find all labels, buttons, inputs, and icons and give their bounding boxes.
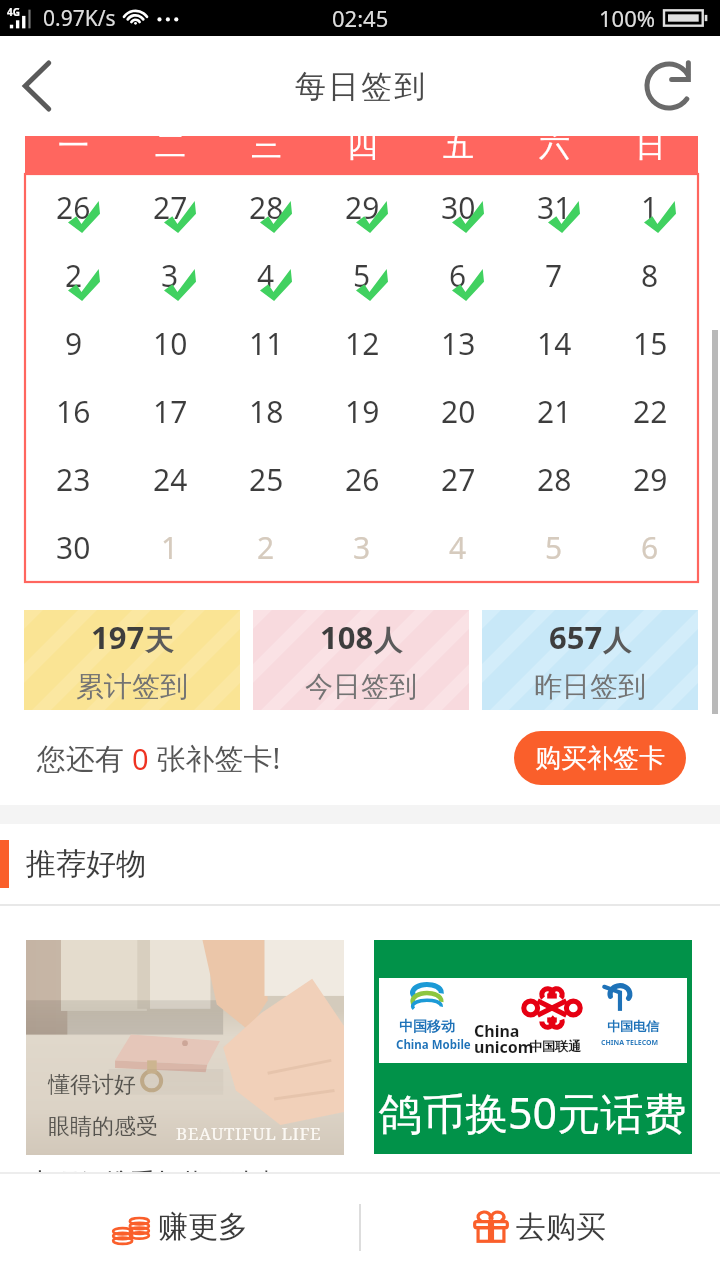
staticText: 5 <box>545 527 563 568</box>
button[interactable]: 31 <box>506 174 602 242</box>
button[interactable]: 懂得讨好 <box>26 940 344 1200</box>
button[interactable]: 21 <box>506 378 602 446</box>
button[interactable]: 2 <box>218 514 314 582</box>
button[interactable]: 27 <box>122 174 218 242</box>
staticText: 100% <box>599 3 656 33</box>
button[interactable]: 22 <box>602 378 698 446</box>
staticText: CHINA TELECOM <box>601 1038 659 1048</box>
staticText: 11 <box>249 323 284 364</box>
staticText: 中国电信 <box>607 1018 659 1034</box>
staticText: 今日签到 <box>305 669 417 704</box>
button[interactable]: 23 <box>25 446 122 514</box>
button[interactable]: 12 <box>314 310 410 378</box>
staticText: 28 <box>249 187 284 228</box>
button[interactable]: 6 <box>602 514 698 582</box>
button[interactable]: 16 <box>25 378 122 446</box>
button[interactable]: 29 <box>602 446 698 514</box>
button[interactable]: 24 <box>122 446 218 514</box>
staticText: 27 <box>153 187 188 228</box>
button[interactable]: 9 <box>25 310 122 378</box>
staticText: 5 <box>353 255 371 296</box>
staticText: 人 <box>374 623 402 658</box>
button[interactable]: 27 <box>410 446 506 514</box>
button[interactable]: 7 <box>506 242 602 310</box>
button[interactable]: 657 <box>482 610 698 710</box>
button[interactable]: 14 <box>506 310 602 378</box>
button[interactable]: 13 <box>410 310 506 378</box>
staticText: 三 <box>251 126 282 164</box>
button[interactable]: 28 <box>218 174 314 242</box>
staticText: 31 <box>537 187 572 228</box>
staticText: 24 <box>153 459 188 500</box>
staticText: 赚更多 <box>158 1208 248 1246</box>
staticText: 9 <box>65 323 83 364</box>
button[interactable]: 28 <box>506 446 602 514</box>
button[interactable]: Refresh <box>636 36 720 136</box>
button[interactable]: 11 <box>218 310 314 378</box>
staticText: 26 <box>56 187 91 228</box>
staticText: 鸽币兑换50元话费券 <box>374 1167 612 1203</box>
button[interactable]: 29 <box>314 174 410 242</box>
button[interactable]: 1 <box>122 514 218 582</box>
button[interactable]: 26 <box>25 174 122 242</box>
button[interactable]: Back <box>0 36 84 136</box>
button[interactable]: 197 <box>24 610 240 710</box>
button[interactable]: 2 <box>25 242 122 310</box>
button[interactable]: 4 <box>218 242 314 310</box>
button[interactable]: 3 <box>314 514 410 582</box>
staticText: 30 <box>441 187 476 228</box>
button[interactable]: 4 <box>410 514 506 582</box>
staticText: China Mobile <box>396 1037 471 1053</box>
staticText: 2 <box>65 255 83 296</box>
staticText: 张补签卡! <box>149 738 281 778</box>
button[interactable]: 5 <box>506 514 602 582</box>
button[interactable]: 去购买 <box>360 1174 720 1280</box>
button[interactable]: 15 <box>602 310 698 378</box>
button[interactable]: 17 <box>122 378 218 446</box>
staticText: 1 <box>641 187 659 228</box>
staticText: 去购买 <box>516 1208 606 1246</box>
button[interactable]: 26 <box>314 446 410 514</box>
staticText: 懂得讨好 <box>48 1071 136 1099</box>
staticText: 鸽币换50元话费 <box>379 1083 687 1142</box>
staticText: 02:45 <box>332 3 389 33</box>
button[interactable]: 30 <box>410 174 506 242</box>
staticText: 购买补签卡 <box>535 742 665 775</box>
staticText: 推荐好物 <box>26 845 146 883</box>
staticText: 中国联通 <box>529 1038 581 1054</box>
staticText: 21 <box>537 391 572 432</box>
staticText: 26 <box>345 459 380 500</box>
button[interactable]: 19 <box>314 378 410 446</box>
button[interactable]: 30 <box>25 514 122 582</box>
button[interactable]: 1 <box>602 174 698 242</box>
staticText: 18 <box>249 391 284 432</box>
button[interactable]: 25 <box>218 446 314 514</box>
staticText: 累计签到 <box>76 669 188 704</box>
button[interactable]: 6 <box>410 242 506 310</box>
button[interactable]: 3 <box>122 242 218 310</box>
button[interactable]: 中国移动 <box>374 940 692 1203</box>
staticText: 中国移动 <box>399 1018 455 1036</box>
staticText: 日 <box>635 126 666 164</box>
staticText: 8 <box>641 255 659 296</box>
button[interactable]: 赚更多 <box>0 1174 360 1280</box>
staticText: 四 <box>347 126 378 164</box>
button[interactable]: 购买补签卡 <box>514 731 686 785</box>
button[interactable]: 108 <box>253 610 469 710</box>
staticText: 10 <box>153 323 188 364</box>
staticText: 3 <box>161 255 179 296</box>
button[interactable]: 5 <box>314 242 410 310</box>
button[interactable]: 8 <box>602 242 698 310</box>
staticText: 29 <box>633 459 668 500</box>
staticText: unicom <box>474 1036 534 1058</box>
button[interactable]: 18 <box>218 378 314 446</box>
staticText: 17 <box>153 391 188 432</box>
staticText: 29 <box>345 187 380 228</box>
button[interactable]: 10 <box>122 310 218 378</box>
button[interactable]: 20 <box>410 378 506 446</box>
staticText: 108 <box>320 616 374 658</box>
staticText: 六 <box>539 126 570 164</box>
staticText: 16 <box>56 391 91 432</box>
staticText: 1 <box>161 527 179 568</box>
staticText: 您还有 <box>37 738 132 778</box>
